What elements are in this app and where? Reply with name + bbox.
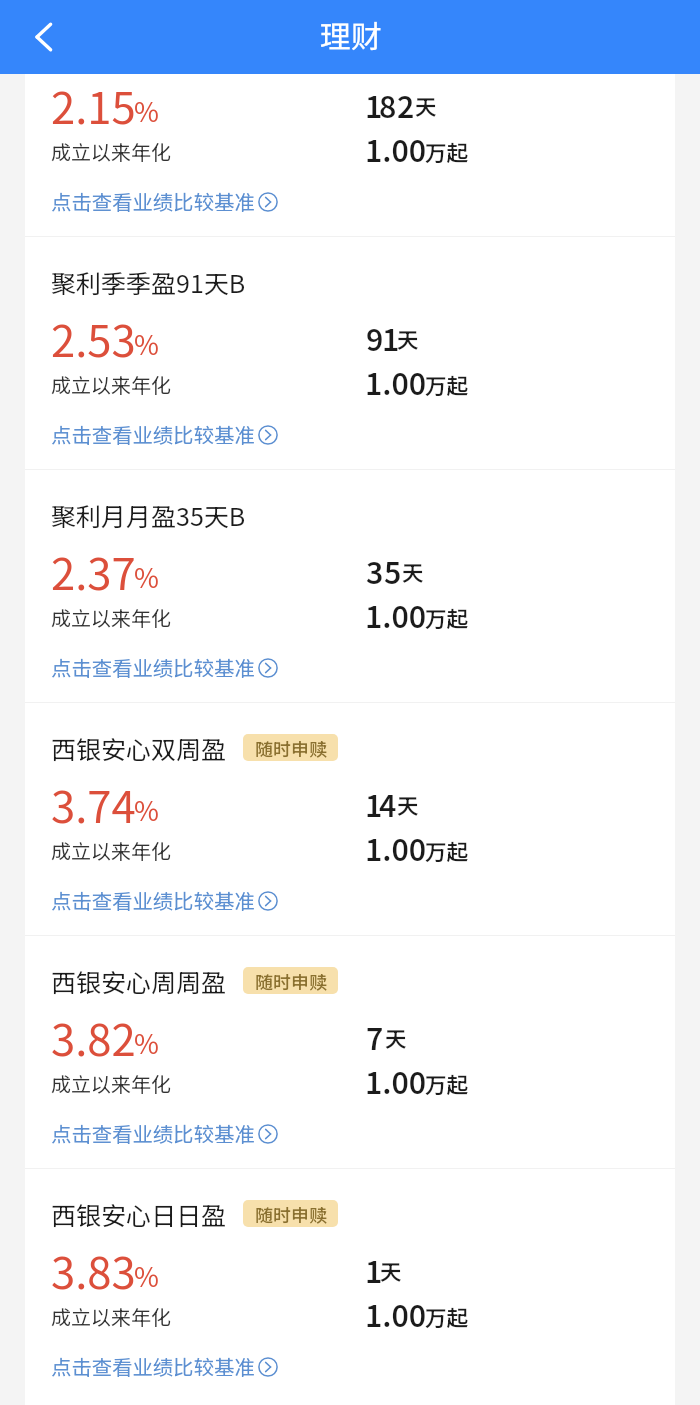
staticText: % [134,1023,159,1062]
staticText: 成立以来年化 [51,1069,171,1098]
button[interactable]: 西银安心周周盈 [25,936,675,1168]
staticText: 西银安心双周盈 [51,730,227,766]
staticText: 聚利季季盈91天B [51,264,246,300]
staticText: % [134,91,159,130]
staticText: 聚利月月盈35天B [51,497,246,533]
staticText: 4 [379,782,397,825]
button[interactable]: 点击查看业绩比较基准 [51,1351,278,1381]
staticText: 点击查看业绩比较基准 [51,652,255,682]
staticText: 1.00 [365,127,427,170]
staticText: % [134,557,159,596]
staticText: 万起 [425,1068,469,1099]
button[interactable]: 点击查看业绩比较基准 [51,652,278,682]
staticText: 天 [415,90,437,121]
staticText: 成立以来年化 [51,836,171,865]
button[interactable]: Back [14,9,70,65]
staticText: 2.37 [51,539,136,602]
staticText: 2.53 [51,306,136,369]
staticText: 点击查看业绩比较基准 [51,186,255,216]
staticText: 5 [384,549,402,592]
staticText: 点击查看业绩比较基准 [51,419,255,449]
staticText: 成立以来年化 [51,137,171,166]
staticText: 随时申赎 [255,1201,327,1227]
staticText: 点击查看业绩比较基准 [51,1118,255,1148]
staticText: 西银安心周周盈 [51,963,227,999]
staticText: 西银安心日日盈 [51,1196,227,1232]
staticText: 聚利半年盈182天 [51,31,243,67]
staticText: 天 [385,1022,407,1053]
staticText: 万起 [425,602,469,633]
staticText: 成立以来年化 [51,603,171,632]
staticText: 成立以来年化 [51,1302,171,1331]
button[interactable]: 西银安心日日盈 [25,1169,675,1401]
staticText: 2.15 [51,73,136,136]
staticText: 随时申赎 [255,735,327,761]
staticText: 点击查看业绩比较基准 [51,885,255,915]
staticText: 1.00 [365,1059,427,1102]
staticText: 3 [366,549,384,592]
staticText: 3.74 [51,772,136,835]
staticText: 3.82 [51,1005,136,1068]
staticText: 成立以来年化 [51,370,171,399]
staticText: 天 [402,556,424,587]
button[interactable]: 点击查看业绩比较基准 [51,1118,278,1148]
staticText: 1.00 [365,593,427,636]
staticText: 3.83 [51,1238,136,1301]
staticText: % [134,790,159,829]
staticText: 随时申赎 [255,968,327,994]
staticText: 1 [382,316,400,359]
button[interactable]: 点击查看业绩比较基准 [51,885,278,915]
button[interactable]: 点击查看业绩比较基准 [51,186,278,216]
staticText: 1 [365,83,383,126]
button[interactable]: 聚利季季盈91天B [25,237,675,469]
staticText: 万起 [425,835,469,866]
staticText: 8 [379,83,397,126]
button[interactable]: 聚利月月盈35天B [25,470,675,702]
staticText: 2 [397,83,415,126]
staticText: 天 [380,1255,402,1286]
button[interactable]: 点击查看业绩比较基准 [51,419,278,449]
staticText: 万起 [425,1301,469,1332]
staticText: 7 [366,1015,384,1058]
staticText: 1.00 [365,360,427,403]
button[interactable]: 聚利半年盈182天 [25,4,675,236]
staticText: 万起 [425,136,469,167]
staticText: 1.00 [365,826,427,869]
staticText: 1.00 [365,1292,427,1335]
staticText: 点击查看业绩比较基准 [51,1351,255,1381]
staticText: 1 [365,1248,383,1291]
staticText: 1 [365,782,383,825]
staticText: 天 [397,789,419,820]
staticText: % [134,324,159,363]
staticText: 万起 [425,369,469,400]
staticText: 9 [366,316,384,359]
button[interactable]: 西银安心双周盈 [25,703,675,935]
staticText: 天 [397,323,419,354]
staticText: 理财 [320,12,382,57]
staticText: % [134,1256,159,1295]
